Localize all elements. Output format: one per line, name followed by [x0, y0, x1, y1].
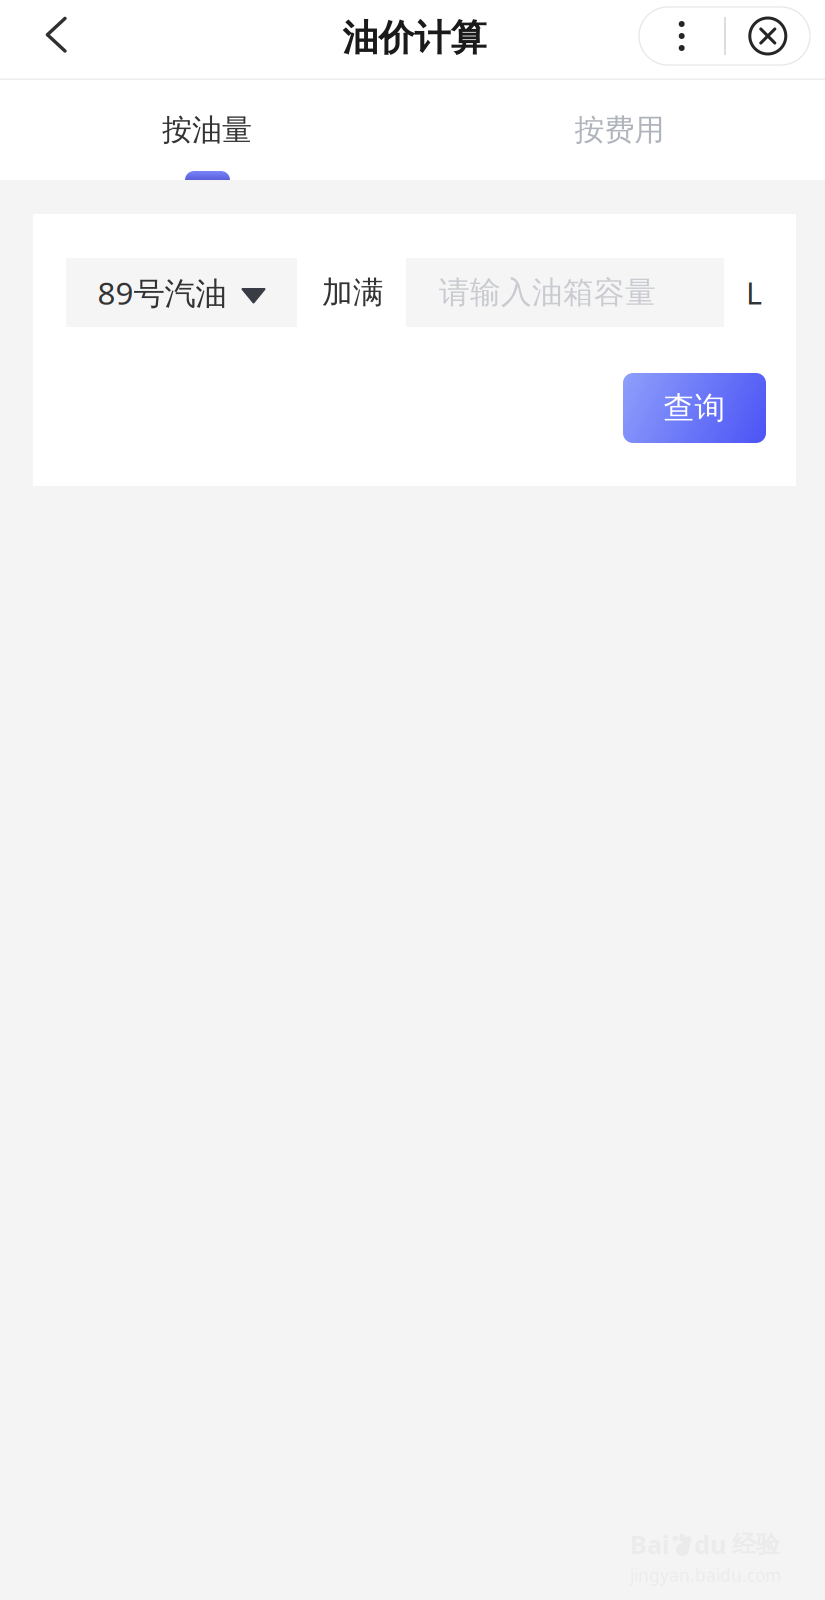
staticText: 加满	[322, 273, 384, 312]
staticText: 按费用	[574, 111, 664, 149]
staticText: 查询	[663, 389, 725, 427]
button[interactable]: 按费用	[414, 80, 825, 180]
button[interactable]: 查询	[623, 373, 766, 443]
staticText: 按油量	[162, 111, 252, 149]
staticText: 请输入油箱容量	[439, 273, 656, 312]
button[interactable]: More options	[639, 7, 724, 65]
button[interactable]: 请输入油箱容量	[406, 258, 724, 327]
button[interactable]: 89号汽油	[66, 258, 297, 327]
staticText: Bai	[630, 1527, 670, 1561]
staticText: du	[694, 1527, 726, 1561]
staticText: L	[746, 272, 762, 313]
staticText: 油价计算	[342, 15, 486, 61]
staticText: 经验	[732, 1529, 780, 1559]
button[interactable]: Close	[726, 7, 810, 65]
button[interactable]: 按油量	[0, 80, 414, 180]
staticText: 89号汽油	[97, 271, 226, 314]
button[interactable]: Back	[0, 0, 112, 80]
